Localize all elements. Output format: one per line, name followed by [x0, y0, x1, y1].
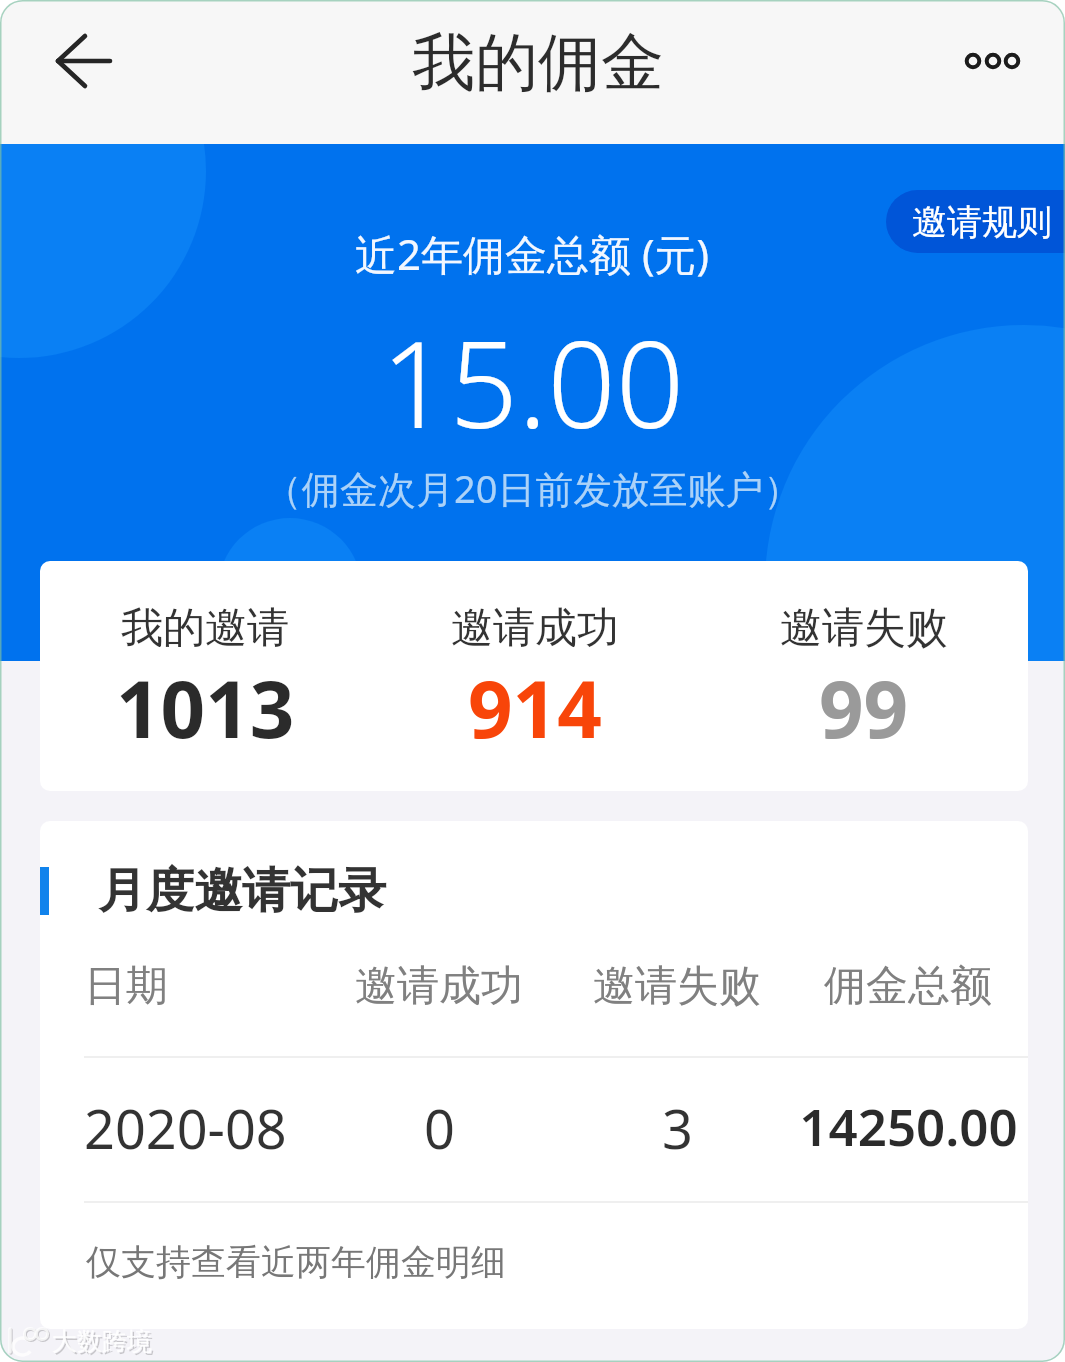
- button[interactable]: 邀请失败: [699, 561, 1028, 791]
- staticText: （佣金次月20日前发放至账户）: [264, 462, 802, 514]
- staticText: 仅支持查看近两年佣金明细: [86, 1240, 506, 1284]
- staticText: 佣金总额: [824, 960, 992, 1013]
- staticText: 3: [662, 1091, 693, 1165]
- staticText: 邀请成功: [355, 960, 523, 1013]
- button[interactable]: 我的邀请: [40, 561, 370, 791]
- staticText: 我的佣金: [412, 23, 664, 102]
- staticText: 14250.00: [799, 1091, 1018, 1160]
- staticText: 邀请失败: [593, 960, 761, 1013]
- staticText: 0: [424, 1091, 455, 1165]
- button[interactable]: 邀请成功: [370, 561, 699, 791]
- button[interactable]: More options: [940, 16, 1040, 106]
- staticText: 月度邀请记录: [98, 861, 386, 921]
- button[interactable]: 邀请规则: [886, 190, 1065, 253]
- staticText: 我的邀请: [121, 602, 289, 655]
- staticText: 99: [819, 655, 909, 761]
- button[interactable]: Back: [34, 12, 134, 110]
- staticText: 邀请规则: [912, 200, 1052, 244]
- staticText: 邀请失败: [780, 602, 948, 655]
- staticText: 邀请成功: [451, 602, 619, 655]
- staticText: 15.00: [381, 300, 685, 463]
- staticText: 914: [468, 655, 602, 761]
- staticText: 1013: [116, 655, 295, 761]
- staticText: 大数跨境: [52, 1326, 152, 1357]
- staticText: 日期: [84, 960, 168, 1013]
- staticText: 近2年佣金总额 (元): [355, 225, 710, 282]
- staticText: 大数跨境: [54, 1328, 154, 1359]
- staticText: 2020-08: [84, 1091, 287, 1165]
